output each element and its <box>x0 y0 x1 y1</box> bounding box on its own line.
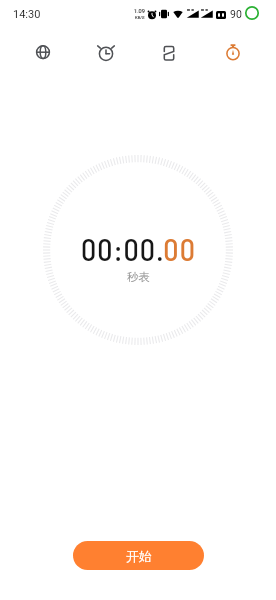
button[interactable]: 开始 <box>73 541 204 570</box>
button[interactable]: Alarm <box>74 32 137 72</box>
staticText: 00:00.00 <box>81 231 196 267</box>
button[interactable]: Stopwatch <box>201 32 265 72</box>
staticText: 开始 <box>126 548 152 564</box>
button[interactable]: World clock <box>11 32 74 72</box>
staticText: 14:30 <box>13 8 41 21</box>
staticText: 90 <box>230 8 242 20</box>
staticText: 秒表 <box>127 270 150 284</box>
staticText: KB/S <box>135 15 145 20</box>
button[interactable]: Timer <box>137 32 201 72</box>
staticText: 1.09 <box>134 8 145 15</box>
